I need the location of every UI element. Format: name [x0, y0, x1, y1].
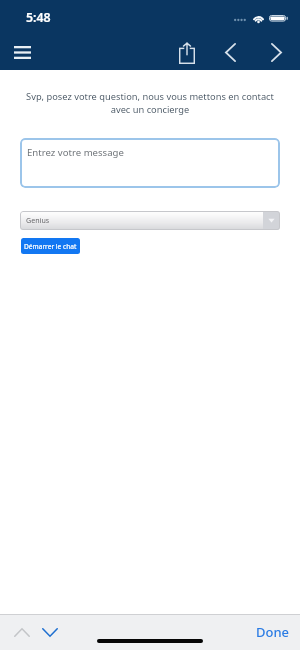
button[interactable]: Menu [6, 38, 39, 66]
button[interactable]: Entrez votre message [20, 138, 280, 188]
staticText: 5:48 [26, 9, 51, 26]
button[interactable]: Démarrer le chat [21, 238, 80, 254]
button[interactable]: Share [173, 39, 201, 67]
staticText: Genius [26, 215, 50, 225]
button[interactable]: Back [216, 38, 244, 66]
staticText: Entrez votre message [27, 146, 124, 159]
staticText: Démarrer le chat [24, 242, 77, 251]
button[interactable]: Genius [20, 211, 280, 230]
button[interactable]: Done [256, 620, 290, 644]
button[interactable]: Next field [36, 620, 64, 644]
staticText: Done [256, 623, 290, 641]
staticText: Svp, posez votre question, nous vous met… [18, 90, 282, 116]
button[interactable]: Previous field [8, 620, 36, 644]
button[interactable]: Forward [262, 38, 290, 66]
